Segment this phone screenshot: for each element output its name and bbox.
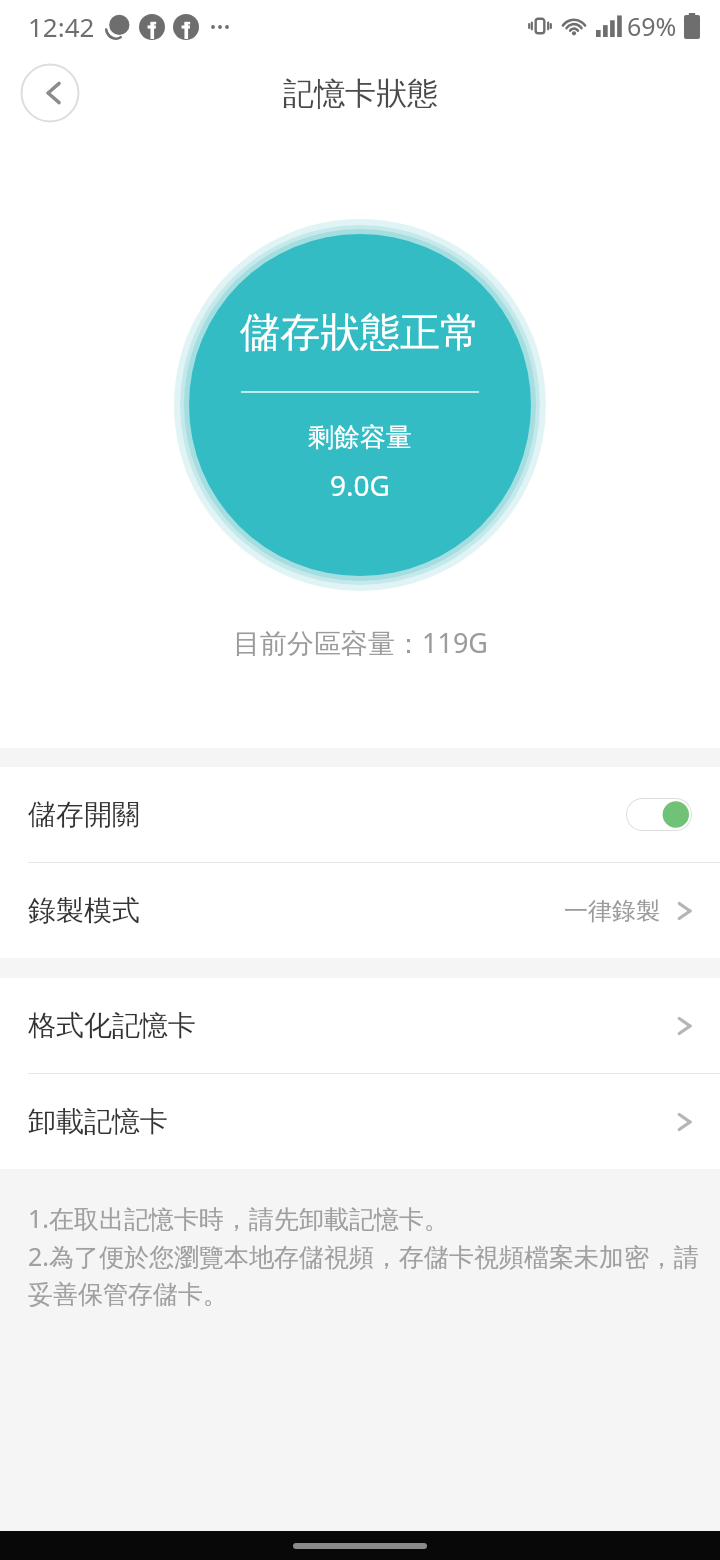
staticText: 剩餘容量 <box>308 421 412 454</box>
button[interactable]: 卸載記憶卡 <box>0 1074 720 1169</box>
button[interactable]: 儲存開關 <box>0 767 720 862</box>
staticText: 一律錄製 <box>564 896 660 926</box>
staticText: 儲存開關 <box>28 797 626 832</box>
staticText: 卸載記憶卡 <box>28 1104 676 1139</box>
staticText: 1.在取出記憶卡時，請先卸載記憶卡。 2.為了便於您瀏覽本地存儲視頻，存儲卡視頻… <box>28 1201 702 1310</box>
button[interactable]: Back <box>20 63 80 123</box>
button[interactable]: 格式化記憶卡 <box>0 978 720 1073</box>
staticText: 錄製模式 <box>28 893 564 928</box>
button[interactable]: 錄製模式 <box>0 863 720 958</box>
staticText: 12:42 <box>28 9 95 44</box>
staticText: 記憶卡狀態 <box>283 74 438 113</box>
staticText: 儲存狀態正常 <box>240 307 480 357</box>
button[interactable]: Storage switch toggle <box>626 798 692 831</box>
staticText: 格式化記憶卡 <box>28 1008 676 1043</box>
staticText: 69% <box>627 9 677 43</box>
staticText: 9.0G <box>330 466 390 504</box>
staticText: 目前分區容量：119G <box>233 624 488 661</box>
